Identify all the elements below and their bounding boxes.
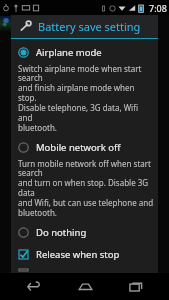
- staticText: Do nothing: [36, 226, 87, 239]
- button[interactable]: Back: [15, 273, 51, 300]
- staticText: Switch airplane mode when start search a…: [18, 63, 154, 134]
- button[interactable]: Do nothing: [11, 223, 158, 242]
- staticText: Battery save setting: [38, 19, 141, 34]
- button[interactable]: Home: [67, 273, 103, 300]
- button[interactable]: Release when stop: [11, 245, 158, 264]
- staticText: Mobile network off: [36, 141, 121, 154]
- staticText: Turn mobile network off when start searc…: [18, 158, 154, 219]
- other: Settings: [19, 20, 32, 33]
- button[interactable]: Mobile network off: [11, 138, 158, 157]
- staticText: Release when stop: [36, 248, 120, 261]
- button[interactable]: Airplane mode: [11, 43, 158, 62]
- staticText: Airplane mode: [36, 46, 102, 59]
- button[interactable]: Recents: [118, 273, 154, 300]
- button[interactable]: Delay timing of switch: [11, 267, 158, 273]
- staticText: 7:08: [149, 2, 167, 14]
